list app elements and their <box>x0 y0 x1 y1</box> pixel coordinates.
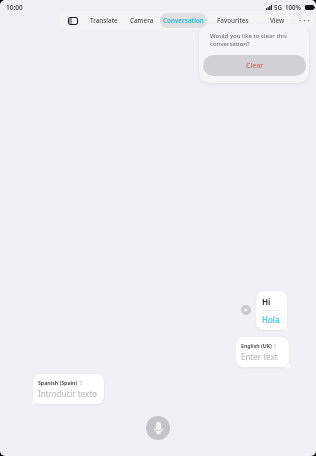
button[interactable]: Hi <box>256 291 287 330</box>
staticText: Conversation <box>163 16 204 25</box>
staticText: Enter text <box>241 351 278 362</box>
button[interactable]: Toggle sidebar <box>65 11 81 30</box>
button[interactable]: More options <box>295 11 314 30</box>
button[interactable]: Conversation <box>160 13 207 28</box>
staticText: Camera <box>130 16 154 25</box>
button[interactable]: Play audio <box>241 305 251 315</box>
staticText: English (UK) <box>241 342 272 349</box>
staticText: Clear <box>246 61 264 71</box>
button[interactable]: View <box>264 13 291 28</box>
staticText: Favourites <box>217 16 249 25</box>
button[interactable]: Voice input <box>146 416 170 440</box>
staticText: 10:00 <box>6 3 23 12</box>
staticText: 100% <box>285 3 302 11</box>
button[interactable]: Favourites <box>212 13 254 28</box>
staticText: Would you like to clear this conversatio… <box>210 31 300 48</box>
staticText: Hola <box>262 314 280 325</box>
staticText: Hi <box>262 296 271 307</box>
button[interactable]: Spanish (Spain) <box>33 374 104 404</box>
staticText: Introducir texto <box>38 388 97 399</box>
staticText: 5G <box>274 3 283 11</box>
staticText: Translate <box>90 16 118 25</box>
staticText: View <box>270 16 285 25</box>
button[interactable]: Camera <box>126 13 157 28</box>
staticText: Spanish (Spain) <box>38 379 78 386</box>
button[interactable]: English (UK) <box>236 337 289 367</box>
button[interactable]: Clear <box>203 55 306 76</box>
button[interactable]: Translate <box>88 13 120 28</box>
